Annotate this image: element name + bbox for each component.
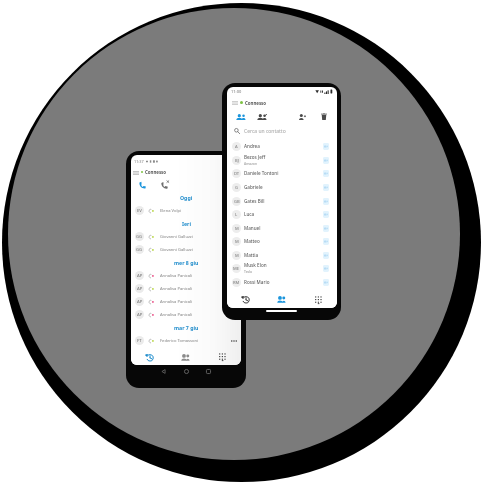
staticText: Connesso: [145, 169, 167, 175]
button[interactable]: Missed calls: [159, 178, 172, 191]
staticText: Manuel: [244, 225, 261, 231]
staticText: Oggi: [180, 194, 193, 201]
staticText: M: [235, 253, 239, 259]
staticText: BJ: [235, 158, 239, 164]
staticText: Annalisa Panicali: [160, 312, 193, 318]
staticText: Giovanni Galluzzi: [160, 234, 193, 240]
staticText: AP: [137, 299, 143, 305]
button[interactable]: GG: [131, 243, 241, 256]
button[interactable]: AP: [131, 269, 241, 282]
button[interactable]: DT: [227, 166, 337, 180]
button[interactable]: Video call: [323, 143, 329, 150]
staticText: Bezos Jeff: [244, 154, 266, 160]
button[interactable]: Video call: [323, 184, 329, 191]
staticText: Gates Bill: [244, 198, 265, 204]
button[interactable]: Video call: [323, 252, 329, 259]
button[interactable]: Video call: [323, 211, 329, 218]
button[interactable]: Delete: [317, 110, 330, 123]
button[interactable]: Recents: [131, 349, 167, 365]
button[interactable]: AP: [131, 308, 241, 321]
staticText: Annalisa Panicali: [160, 273, 193, 279]
staticText: AP: [137, 312, 143, 318]
button[interactable]: Edit group: [255, 110, 268, 123]
staticText: mer 8 giu: [174, 259, 199, 266]
staticText: FT: [137, 338, 142, 344]
button[interactable]: Video call: [323, 198, 329, 205]
button[interactable]: BJ: [227, 153, 337, 167]
other: Settings: [234, 159, 238, 163]
staticText: Tesla: [244, 269, 252, 274]
staticText: 11:00: [231, 89, 242, 94]
button[interactable]: GG: [131, 230, 241, 243]
staticText: Mattia: [244, 252, 259, 258]
button[interactable]: Video call: [323, 265, 329, 272]
staticText: Cerca un contatto: [244, 128, 286, 135]
button[interactable]: AP: [131, 295, 241, 308]
staticText: Rossi Mario: [244, 279, 270, 285]
button[interactable]: Video call: [323, 238, 329, 245]
button[interactable]: Home: [181, 366, 192, 377]
staticText: DT: [234, 171, 240, 177]
staticText: EV: [137, 208, 142, 214]
staticText: GB: [234, 199, 240, 205]
button[interactable]: Video call: [323, 170, 329, 177]
staticText: Daniele Tontoni: [244, 170, 279, 176]
staticText: AP: [137, 273, 143, 279]
button[interactable]: Recent apps: [203, 366, 214, 377]
staticText: Ieri: [182, 220, 191, 227]
button[interactable]: Menu: [230, 98, 239, 107]
staticText: Giovanni Galluzzi: [160, 247, 193, 253]
staticText: A: [235, 144, 238, 150]
staticText: mar 7 giu: [174, 324, 199, 331]
staticText: Musk Elon: [244, 262, 267, 268]
button[interactable]: Video call: [323, 157, 329, 164]
button[interactable]: Dialpad: [204, 349, 241, 365]
staticText: RM: [233, 280, 240, 286]
button[interactable]: L: [227, 207, 337, 221]
button[interactable]: AP: [131, 282, 241, 295]
staticText: GG: [136, 234, 143, 240]
button[interactable]: FT: [131, 334, 241, 347]
staticText: Annalisa Panicali: [160, 286, 193, 292]
button[interactable]: Back: [158, 366, 169, 377]
button[interactable]: Video call: [323, 279, 329, 286]
button[interactable]: EV: [131, 204, 241, 217]
staticText: G: [235, 185, 238, 191]
button[interactable]: Menu: [131, 168, 140, 177]
staticText: Matteo: [244, 238, 260, 244]
staticText: GG: [136, 247, 143, 253]
button[interactable]: Add contact: [296, 110, 309, 123]
staticText: Amazon: [244, 161, 257, 166]
button[interactable]: A: [227, 139, 337, 153]
button[interactable]: Dialpad: [300, 291, 337, 308]
staticText: Connesso: [245, 100, 267, 106]
button[interactable]: Contacts: [263, 291, 300, 308]
button[interactable]: G: [227, 180, 337, 194]
staticText: Luca: [244, 211, 255, 217]
staticText: sab 28 mag: [171, 350, 201, 357]
button[interactable]: Video call: [323, 225, 329, 232]
button[interactable]: ME: [227, 261, 337, 275]
button[interactable]: Contacts: [167, 349, 204, 365]
button[interactable]: GB: [227, 194, 337, 208]
staticText: 11:37: [134, 159, 144, 164]
staticText: M: [235, 239, 239, 245]
staticText: ME: [233, 266, 240, 272]
button[interactable]: M: [227, 248, 337, 262]
button[interactable]: Groups: [234, 110, 247, 123]
button[interactable]: M: [227, 221, 337, 235]
button[interactable]: Call: [136, 178, 149, 191]
staticText: M: [235, 226, 239, 232]
button[interactable]: RM: [227, 275, 337, 289]
staticText: Elena Volpi: [160, 208, 182, 214]
staticText: Annalisa Panicali: [160, 299, 193, 305]
button[interactable]: Recents: [227, 291, 263, 308]
button[interactable]: M: [227, 234, 337, 248]
staticText: Gabriele: [244, 184, 263, 190]
staticText: Andrea: [244, 143, 260, 149]
staticText: AP: [137, 286, 143, 292]
staticText: L: [235, 212, 238, 218]
staticText: Federico Tomassoni: [160, 338, 199, 344]
